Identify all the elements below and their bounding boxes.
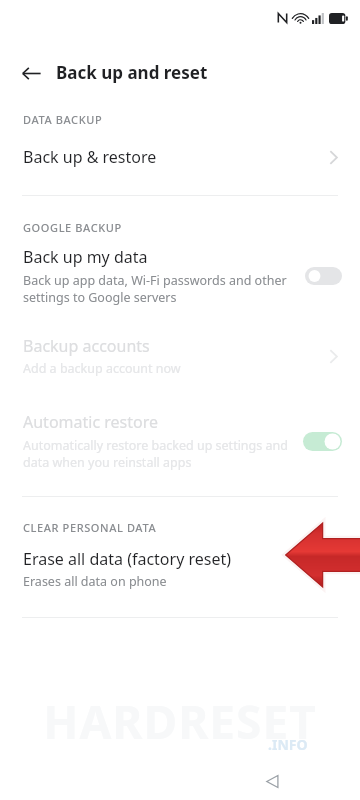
staticText: DATA BACKUP xyxy=(23,112,103,127)
staticText: .INFO xyxy=(268,735,308,754)
staticText: Back up app data, Wi-Fi passwords and ot… xyxy=(23,272,288,306)
staticText: Add a backup account now xyxy=(23,360,181,377)
staticText: Erases all data on phone xyxy=(23,573,167,590)
staticText: Back up my data xyxy=(23,246,148,268)
button[interactable]: Back xyxy=(260,769,284,793)
button[interactable]: Automatic restore xyxy=(0,406,360,476)
staticText: HARDRESET xyxy=(0,690,360,753)
staticText: Back up & restore xyxy=(23,146,157,168)
button[interactable]: Erase all data (factory reset) xyxy=(0,543,360,595)
staticText: Automatic restore xyxy=(23,411,158,433)
staticText: Backup accounts xyxy=(23,335,150,357)
button[interactable]: Back up my data xyxy=(0,243,360,309)
button[interactable]: Back up my data toggle xyxy=(305,267,342,285)
button[interactable]: Backup accounts xyxy=(0,330,360,382)
staticText: GOOGLE BACKUP xyxy=(23,220,122,235)
button[interactable]: Back up & restore xyxy=(0,134,360,180)
staticText: Back up and reset xyxy=(56,61,208,84)
button[interactable]: Back xyxy=(14,56,48,90)
staticText: CLEAR PERSONAL DATA xyxy=(23,520,157,535)
staticText: Erase all data (factory reset) xyxy=(23,548,232,570)
staticText: Automatically restore backed up settings… xyxy=(23,437,288,471)
